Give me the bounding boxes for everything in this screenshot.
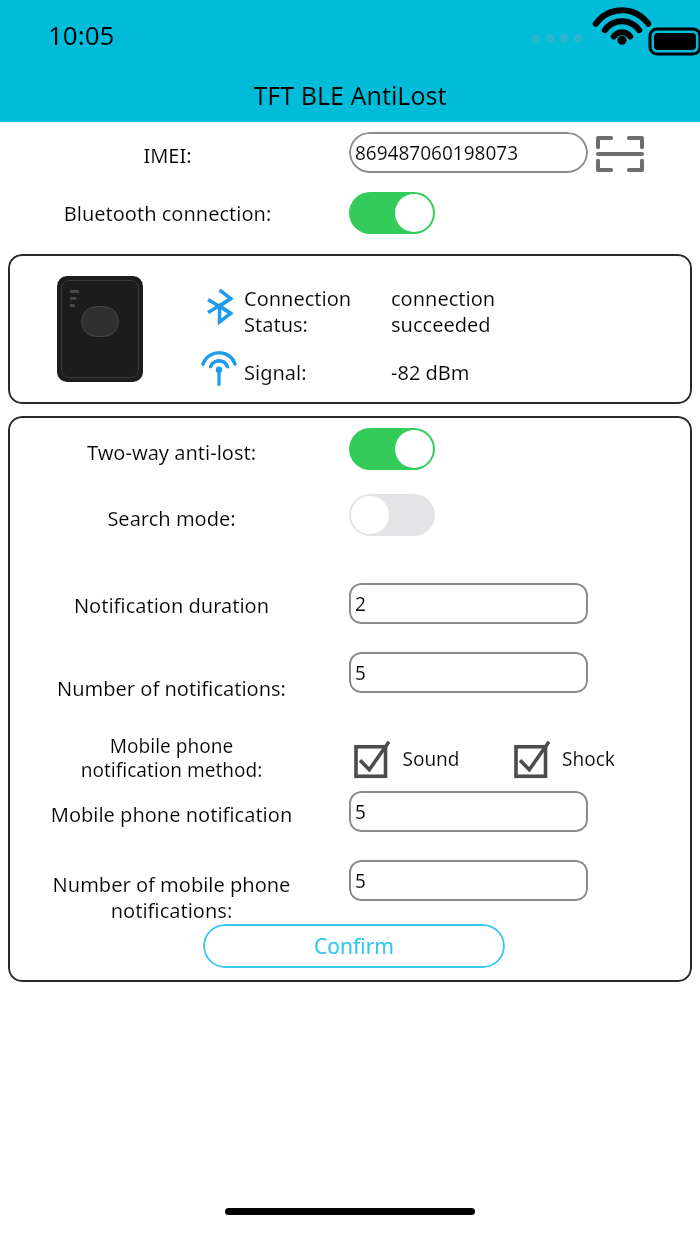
- staticText: Sound: [402, 746, 460, 772]
- button[interactable]: 5: [349, 652, 588, 693]
- button[interactable]: Shock: [516, 741, 615, 777]
- staticText: connection succeeded: [391, 285, 571, 337]
- staticText: -82 dBm: [391, 359, 571, 386]
- staticText: Signal:: [244, 359, 394, 386]
- staticText: Mobile phone notification method:: [8, 733, 335, 782]
- staticText: Two-way anti-lost:: [8, 439, 335, 466]
- staticText: 2: [355, 591, 366, 617]
- button[interactable]: Toggle on: [349, 192, 435, 234]
- staticText: 5: [355, 799, 366, 825]
- staticText: 5: [355, 660, 366, 686]
- staticText: Connection Status:: [244, 285, 394, 337]
- staticText: Notification duration: [8, 592, 335, 619]
- button[interactable]: Toggle off: [349, 494, 435, 536]
- staticText: Bluetooth connection:: [0, 200, 335, 227]
- button[interactable]: 2: [349, 583, 588, 624]
- button[interactable]: Sound: [356, 741, 460, 777]
- button[interactable]: Confirm: [203, 924, 505, 968]
- staticText: Confirm: [314, 932, 394, 961]
- staticText: Shock: [562, 746, 615, 772]
- button[interactable]: 869487060198073: [349, 132, 588, 173]
- button[interactable]: Toggle on: [349, 428, 435, 470]
- button[interactable]: Scan barcode: [598, 134, 642, 174]
- staticText: IMEI:: [0, 142, 335, 169]
- staticText: 10:05: [48, 17, 115, 52]
- staticText: Search mode:: [8, 505, 335, 532]
- staticText: 5: [355, 868, 366, 894]
- staticText: Number of notifications:: [8, 675, 335, 702]
- button[interactable]: 5: [349, 860, 588, 901]
- button[interactable]: 5: [349, 791, 588, 832]
- staticText: TFT BLE AntiLost: [0, 78, 700, 112]
- staticText: 869487060198073: [355, 140, 519, 166]
- staticText: Number of mobile phone notifications:: [8, 871, 335, 923]
- staticText: Mobile phone notification: [8, 801, 335, 828]
